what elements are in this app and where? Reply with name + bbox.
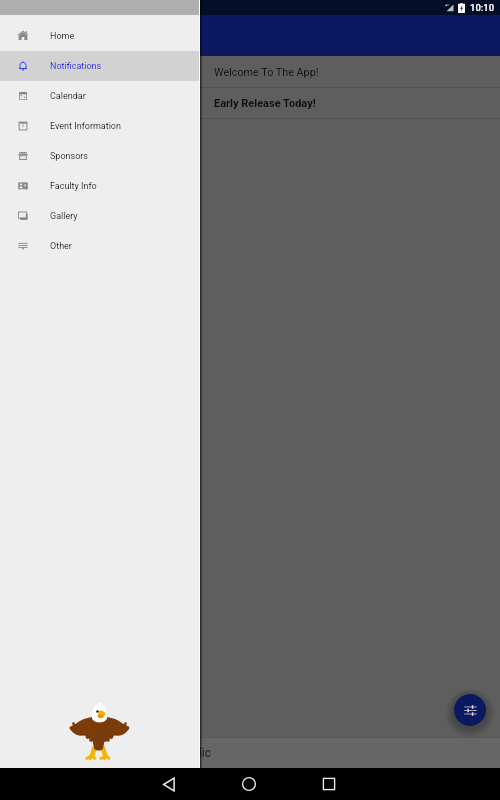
staticText: 10:10 xyxy=(470,2,495,13)
button[interactable]: Home xyxy=(239,774,259,794)
staticText: Notifications xyxy=(50,61,102,72)
staticText: Event Information xyxy=(50,121,121,132)
button[interactable]: Early Release Today! xyxy=(0,88,500,119)
button[interactable]: Welcome To The App! xyxy=(0,57,500,88)
button[interactable]: Sponsors xyxy=(0,141,200,171)
button[interactable]: Faculty Info xyxy=(0,171,200,201)
staticText: Early Release Today! xyxy=(214,97,316,110)
staticText: Gallery xyxy=(50,211,78,222)
staticText: Home xyxy=(50,31,75,42)
button[interactable]: Republic xyxy=(0,738,500,768)
button[interactable]: Event Information xyxy=(0,111,200,141)
button[interactable]: Home xyxy=(0,21,200,51)
button[interactable]: Recents xyxy=(319,774,339,794)
button[interactable]: Notifications xyxy=(0,51,200,81)
staticText: Other xyxy=(50,241,72,252)
staticText: Faculty Info xyxy=(50,181,97,192)
staticText: Welcome To The App! xyxy=(214,66,319,79)
button[interactable]: Other xyxy=(0,231,200,261)
button[interactable]: Settings xyxy=(454,694,486,726)
button[interactable]: Calendar xyxy=(0,81,200,111)
staticText: Republic xyxy=(165,746,211,760)
staticText: Sponsors xyxy=(50,151,88,162)
button[interactable]: Gallery xyxy=(0,201,200,231)
button[interactable]: Back xyxy=(159,774,180,795)
staticText: Calendar xyxy=(50,91,86,102)
